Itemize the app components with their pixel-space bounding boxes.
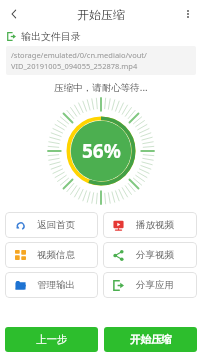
staticText: /storage/emulated/0/cn.mediaio/vout/ VID… <box>11 50 147 71</box>
button[interactable]: 上一步 <box>5 327 98 352</box>
staticText: 返回首页 <box>37 219 75 231</box>
staticText: 压缩中，请耐心等待... <box>0 81 202 94</box>
staticText: 分享应用 <box>136 279 174 291</box>
button[interactable]: More options <box>174 0 202 28</box>
button[interactable]: 管理输出 <box>5 272 98 298</box>
staticText: 管理输出 <box>37 279 75 291</box>
button[interactable]: Back <box>0 0 28 28</box>
staticText: 播放视频 <box>136 219 174 231</box>
button[interactable]: 播放视频 <box>103 212 197 238</box>
staticText: 输出文件目录 <box>21 30 81 43</box>
staticText: 56% <box>82 138 121 164</box>
button[interactable]: 返回首页 <box>5 212 98 238</box>
button[interactable]: 分享应用 <box>103 272 197 298</box>
staticText: 开始压缩 <box>130 333 172 346</box>
staticText: 上一步 <box>36 333 68 346</box>
staticText: 视频信息 <box>37 249 75 261</box>
staticText: 分享视频 <box>136 249 174 261</box>
button[interactable]: 开始压缩 <box>104 327 197 352</box>
staticText: 开始压缩 <box>77 7 125 22</box>
button[interactable]: 视频信息 <box>5 242 98 268</box>
button[interactable]: 分享视频 <box>103 242 197 268</box>
